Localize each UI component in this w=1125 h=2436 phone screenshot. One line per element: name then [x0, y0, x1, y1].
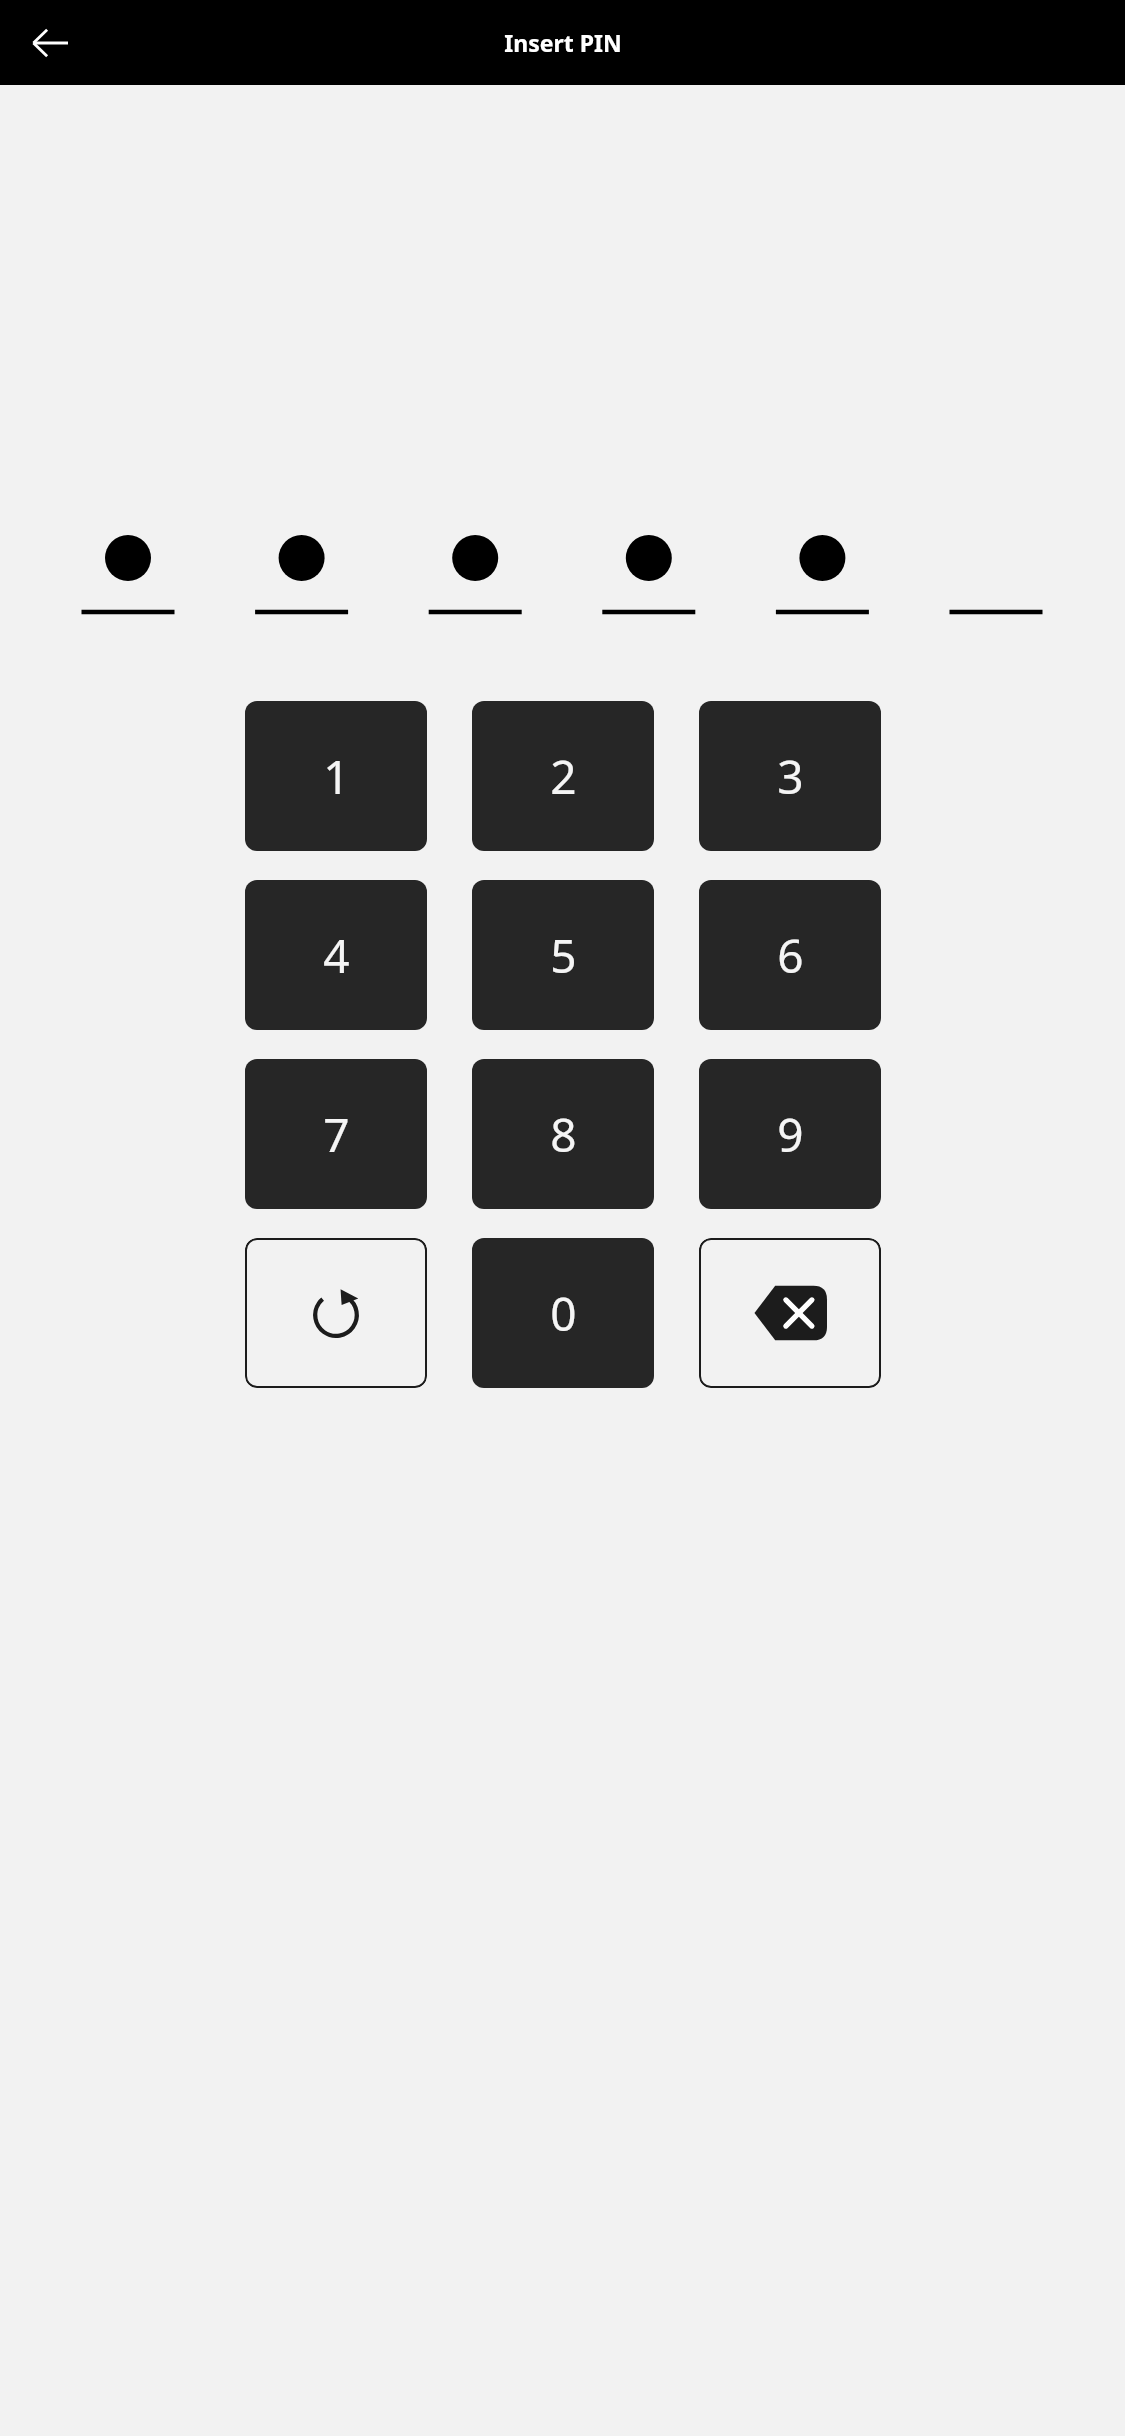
button[interactable]: 8	[472, 1059, 654, 1209]
staticText: 5	[550, 924, 577, 987]
staticText: Insert PIN	[504, 27, 622, 58]
staticText: 3	[777, 745, 804, 808]
button[interactable]: Refresh	[245, 1238, 427, 1388]
button[interactable]: 9	[699, 1059, 881, 1209]
button[interactable]: 0	[472, 1238, 654, 1388]
staticText: 4	[323, 924, 350, 987]
staticText: 9	[777, 1103, 804, 1166]
button[interactable]: 1	[245, 701, 427, 851]
button[interactable]: 2	[472, 701, 654, 851]
button[interactable]: 7	[245, 1059, 427, 1209]
staticText: 2	[550, 745, 577, 808]
staticText: 1	[323, 745, 350, 808]
staticText: 7	[323, 1103, 350, 1166]
staticText: 8	[550, 1103, 577, 1166]
staticText: 6	[777, 924, 804, 987]
button[interactable]: Backspace	[699, 1238, 881, 1388]
button[interactable]: 5	[472, 880, 654, 1030]
button[interactable]: Back	[13, 6, 87, 80]
button[interactable]: 6	[699, 880, 881, 1030]
button[interactable]: 4	[245, 880, 427, 1030]
button[interactable]: 3	[699, 701, 881, 851]
staticText: 0	[550, 1282, 577, 1345]
